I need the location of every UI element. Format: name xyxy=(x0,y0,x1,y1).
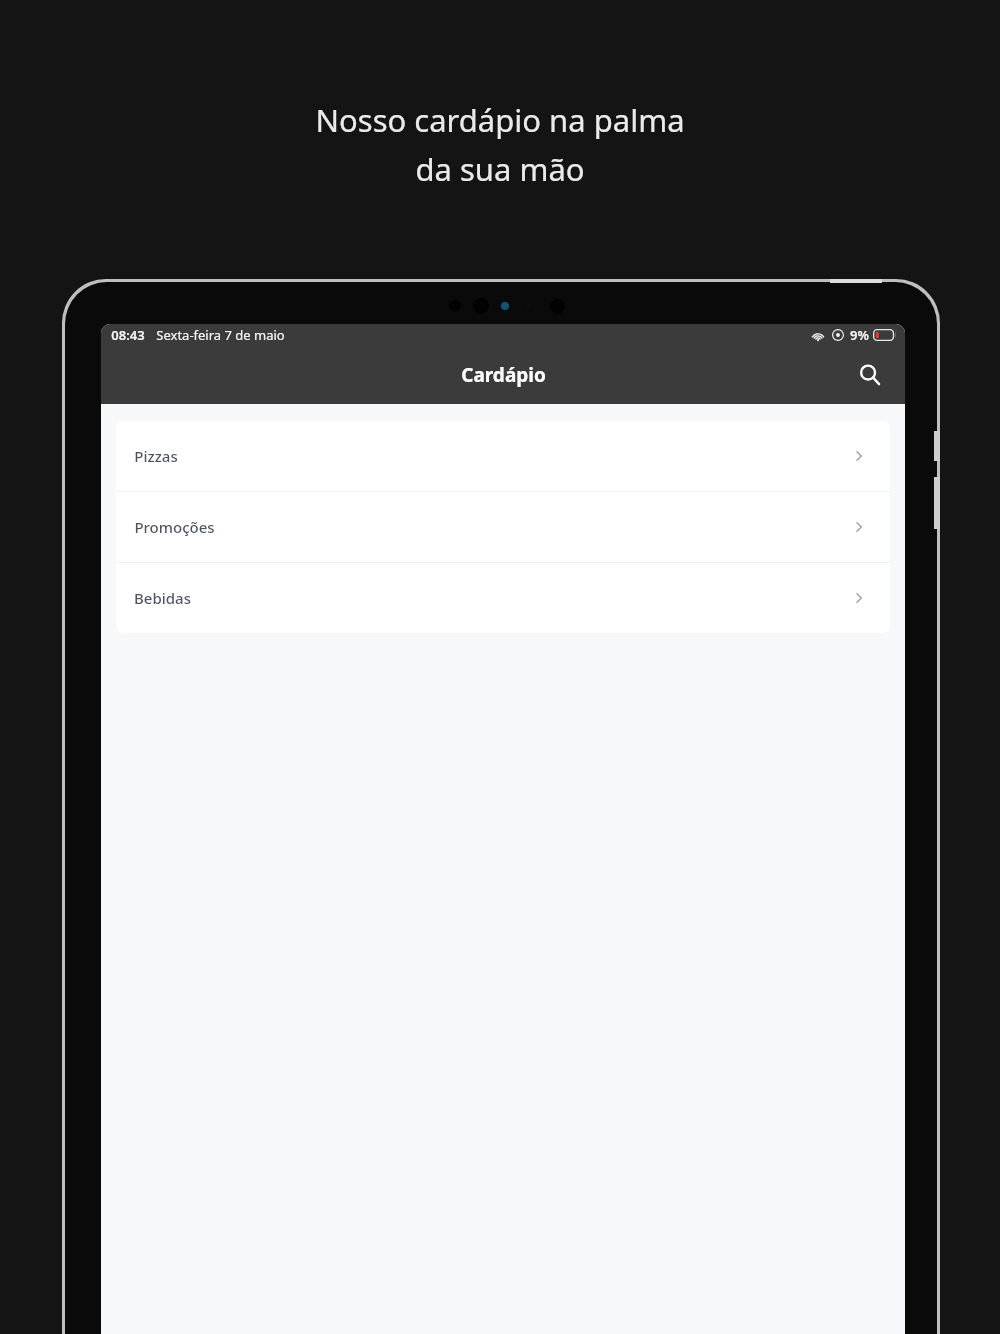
staticText: Cardápio xyxy=(461,362,546,388)
staticText: Bebidas xyxy=(134,588,191,608)
staticText: Pizzas xyxy=(134,446,178,466)
staticText: da sua mão xyxy=(415,148,585,190)
staticText: Promoções xyxy=(134,517,215,537)
staticText: Nosso cardápio na palma xyxy=(315,99,685,141)
button[interactable]: Pesquisar xyxy=(848,353,892,397)
button[interactable]: Promoções xyxy=(116,492,890,562)
staticText: 9% xyxy=(850,326,869,344)
staticText: Sexta-feira 7 de maio xyxy=(156,326,285,344)
button[interactable]: Bebidas xyxy=(116,563,890,633)
button[interactable]: Pizzas xyxy=(116,421,890,491)
staticText: 08:43 xyxy=(111,326,145,344)
